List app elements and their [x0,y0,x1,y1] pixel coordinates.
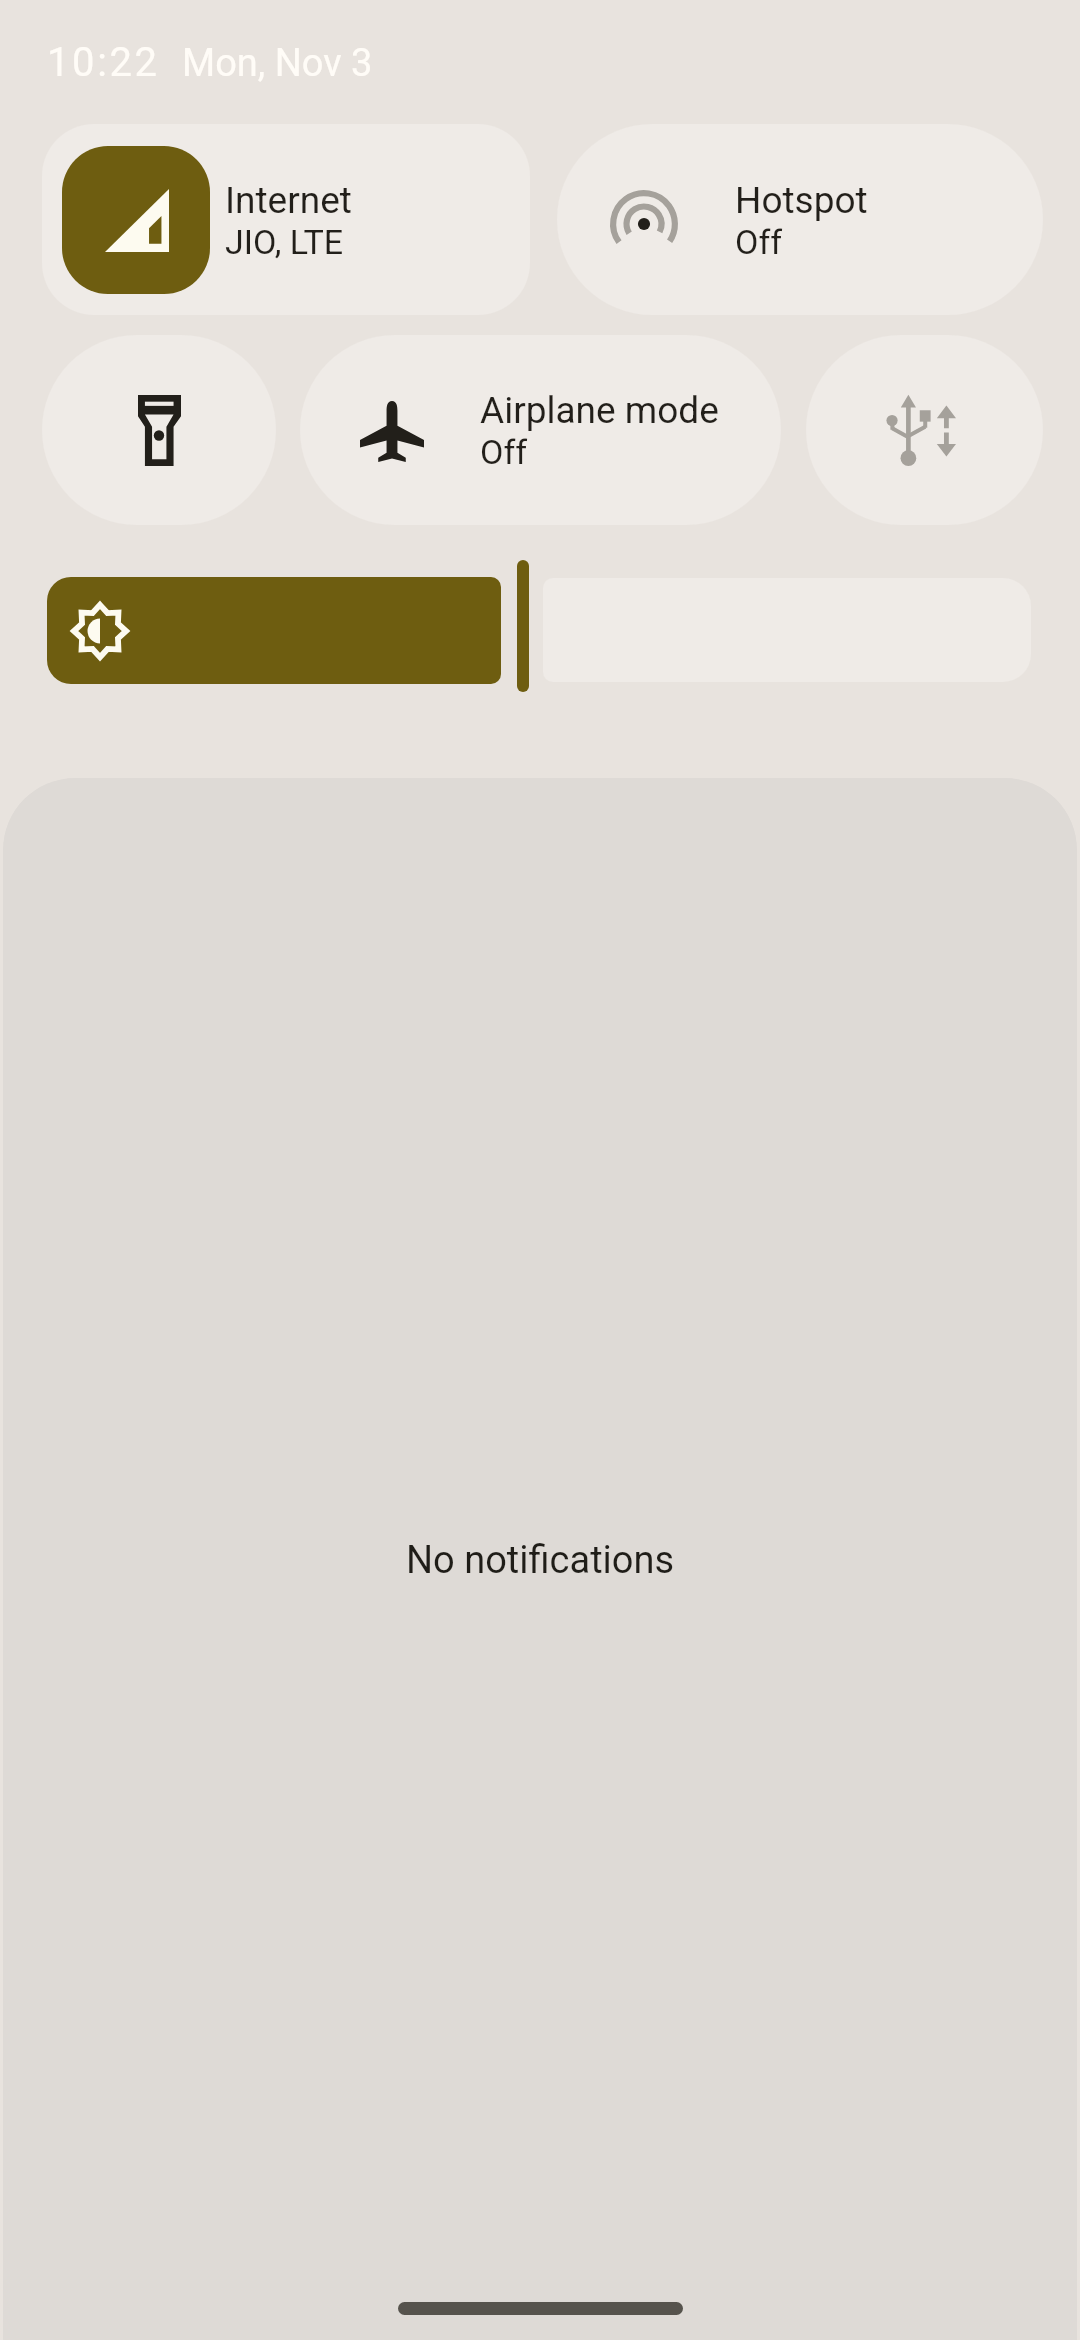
button[interactable]: Internet [42,124,530,315]
staticText: Internet [225,179,352,222]
staticText: JIO, LTE [225,222,344,262]
staticText: No notifications [406,1538,675,1583]
button[interactable]: Airplane mode [300,335,781,525]
button[interactable]: Hotspot [557,124,1043,315]
staticText: Off [480,432,528,472]
staticText: Hotspot [735,179,868,222]
button[interactable]: USB preferences [806,335,1043,525]
button[interactable]: Flashlight [42,335,276,525]
staticText: Mon, Nov 3 [182,41,373,86]
staticText: Off [735,222,783,262]
button[interactable]: Brightness [47,577,501,684]
staticText: 10:22 [47,39,160,86]
staticText: Airplane mode [480,389,719,432]
